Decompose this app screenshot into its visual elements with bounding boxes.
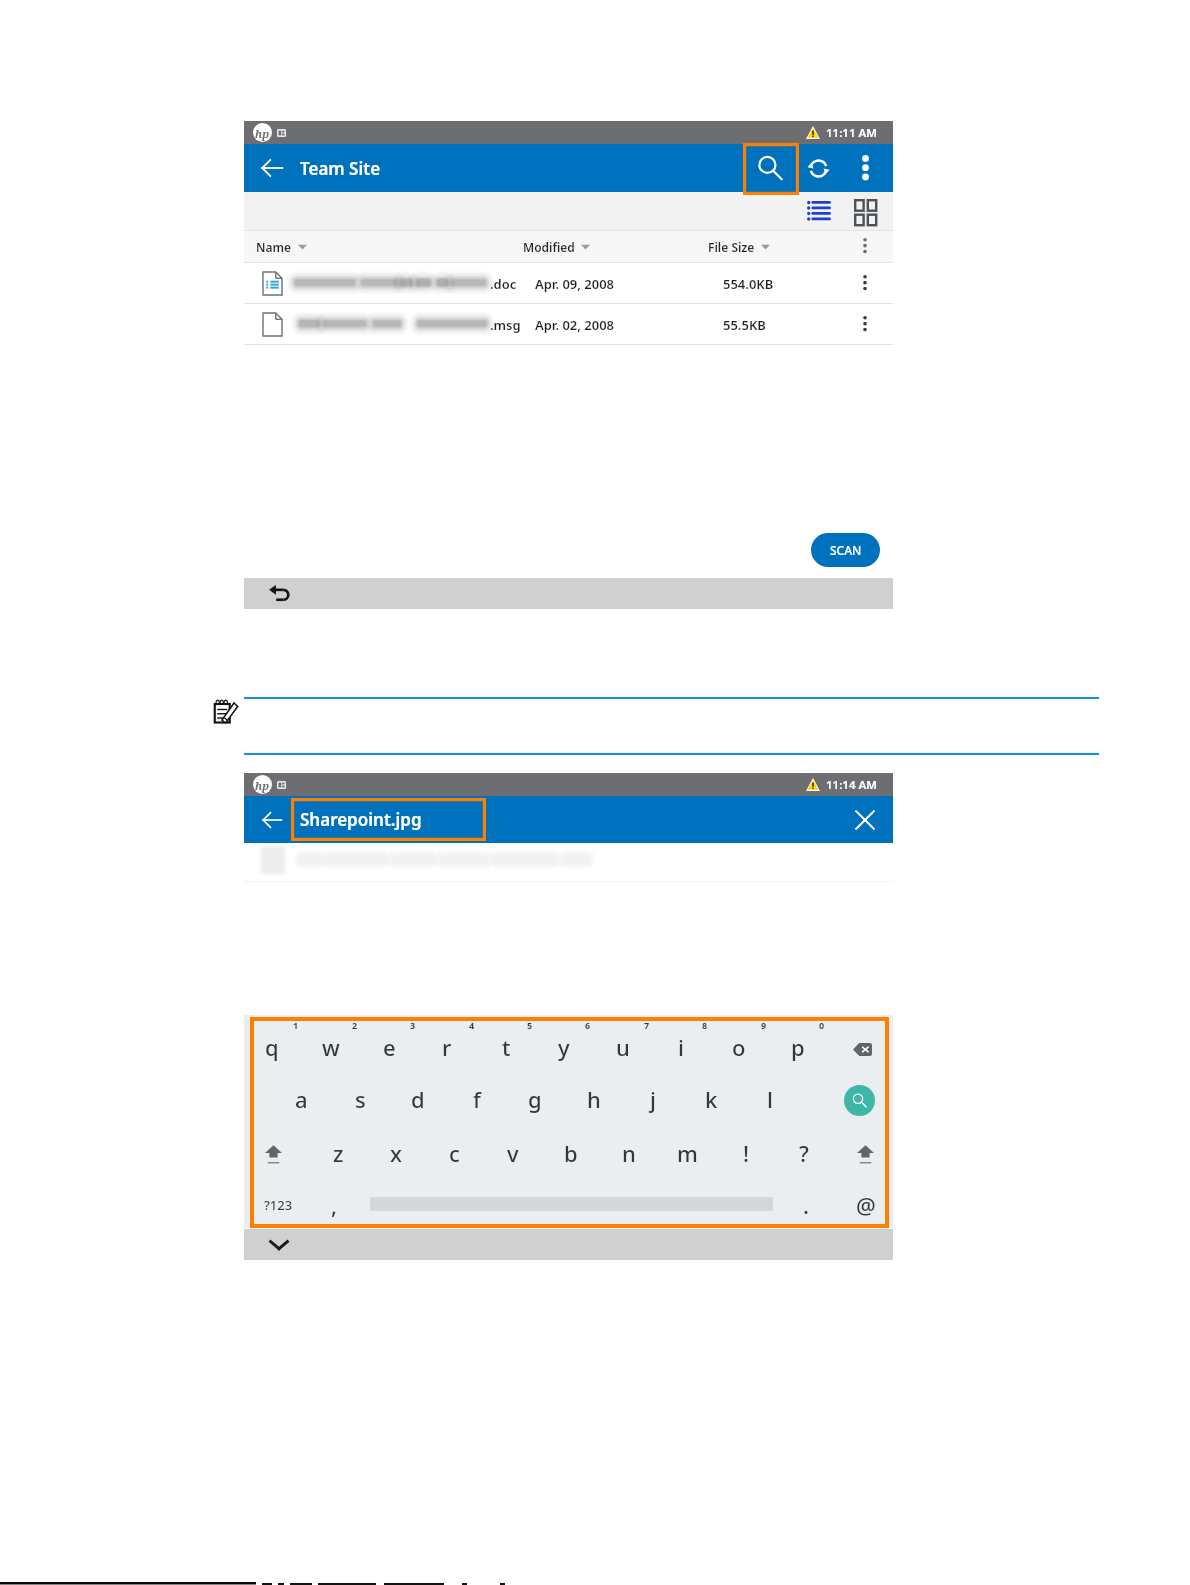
- staticText: g: [528, 1084, 542, 1114]
- button[interactable]: !: [717, 1128, 775, 1178]
- staticText: File Size: [708, 239, 755, 255]
- staticText: k: [705, 1084, 718, 1114]
- button[interactable]: Item options: [844, 304, 885, 344]
- button[interactable]: Backspace: [839, 1024, 885, 1074]
- staticText: n: [622, 1138, 636, 1168]
- button[interactable]: [244, 843, 893, 881]
- button[interactable]: Modified: [523, 231, 590, 262]
- staticText: h: [587, 1084, 601, 1114]
- staticText: Name: [256, 239, 292, 255]
- button[interactable]: b: [542, 1128, 600, 1178]
- button[interactable]: x: [367, 1128, 425, 1178]
- staticText: Sharepoint.jpg: [300, 808, 422, 831]
- button[interactable]: t: [477, 1022, 535, 1072]
- button[interactable]: q: [243, 1022, 301, 1072]
- staticText: .doc: [490, 275, 517, 293]
- staticText: Modified: [523, 239, 575, 255]
- staticText: q: [265, 1032, 279, 1062]
- button[interactable]: List view: [796, 192, 840, 230]
- staticText: e: [383, 1032, 396, 1062]
- button[interactable]: n: [600, 1128, 658, 1178]
- staticText: 7: [644, 1019, 650, 1031]
- staticText: Apr. 09, 2008: [535, 275, 615, 293]
- button[interactable]: u: [594, 1022, 652, 1072]
- button[interactable]: .: [786, 1182, 826, 1227]
- button[interactable]: y: [535, 1022, 593, 1072]
- button[interactable]: Sort options: [844, 231, 885, 262]
- staticText: 55.5KB: [723, 316, 766, 334]
- staticText: 2: [352, 1019, 358, 1031]
- staticText: 554.0KB: [723, 275, 774, 293]
- staticText: 0: [819, 1019, 825, 1031]
- staticText: 11:14 AM: [826, 777, 877, 793]
- staticText: u: [616, 1032, 630, 1062]
- button[interactable]: Refresh: [794, 144, 842, 192]
- button[interactable]: o: [710, 1022, 768, 1072]
- staticText: a: [295, 1084, 308, 1114]
- staticText: 3: [410, 1019, 416, 1031]
- staticText: hp: [255, 778, 270, 793]
- button[interactable]: h: [565, 1074, 623, 1124]
- button[interactable]: Shift: [250, 1129, 296, 1179]
- button[interactable]: @: [846, 1182, 886, 1227]
- staticText: Team Site: [300, 157, 381, 180]
- staticText: o: [732, 1032, 746, 1062]
- button[interactable]: Clear search: [837, 796, 893, 843]
- button[interactable]: Sharepoint.jpg: [300, 798, 495, 841]
- button[interactable]: j: [624, 1074, 682, 1124]
- button[interactable]: k: [682, 1074, 740, 1124]
- button[interactable]: More options: [844, 144, 886, 192]
- staticText: b: [564, 1138, 578, 1168]
- staticText: 4: [469, 1019, 475, 1031]
- button[interactable]: i: [652, 1022, 710, 1072]
- button[interactable]: r: [418, 1022, 476, 1072]
- staticText: d: [411, 1084, 425, 1114]
- button[interactable]: Search: [844, 1085, 875, 1116]
- button[interactable]: c: [425, 1128, 483, 1178]
- button[interactable]: Item options: [844, 263, 885, 303]
- staticText: !: [743, 1138, 750, 1168]
- staticText: .: [803, 1190, 809, 1220]
- button[interactable]: Back: [244, 144, 300, 192]
- button[interactable]: f: [448, 1074, 506, 1124]
- staticText: ,: [331, 1190, 338, 1220]
- staticText: m: [677, 1138, 698, 1168]
- staticText: 5: [527, 1019, 533, 1031]
- button[interactable]: p: [769, 1022, 827, 1072]
- button[interactable]: ?123: [249, 1182, 307, 1227]
- button[interactable]: w: [302, 1022, 360, 1072]
- button[interactable]: Back: [256, 578, 302, 609]
- button[interactable]: .doc: [244, 263, 893, 303]
- button[interactable]: Back: [244, 796, 300, 843]
- staticText: 6: [585, 1019, 591, 1031]
- button[interactable]: l: [741, 1074, 799, 1124]
- button[interactable]: Hide keyboard: [256, 1229, 302, 1260]
- staticText: y: [558, 1032, 570, 1062]
- button[interactable]: z: [309, 1128, 367, 1178]
- button[interactable]: SCAN: [811, 533, 880, 567]
- button[interactable]: g: [506, 1074, 564, 1124]
- button[interactable]: v: [484, 1128, 542, 1178]
- staticText: Apr. 02, 2008: [535, 316, 615, 334]
- button[interactable]: Grid view: [843, 192, 885, 230]
- staticText: hp: [255, 126, 270, 141]
- staticText: s: [355, 1084, 366, 1114]
- button[interactable]: Search: [743, 144, 797, 192]
- button[interactable]: e: [360, 1022, 418, 1072]
- staticText: f: [473, 1084, 481, 1114]
- button[interactable]: ,: [314, 1182, 354, 1227]
- button[interactable]: d: [389, 1074, 447, 1124]
- staticText: 1: [293, 1019, 299, 1031]
- button[interactable]: m: [658, 1128, 716, 1178]
- button[interactable]: a: [272, 1074, 330, 1124]
- button[interactable]: ?: [775, 1128, 833, 1178]
- button[interactable]: Name: [256, 231, 307, 262]
- staticText: w: [322, 1032, 340, 1062]
- button[interactable]: .msg: [244, 304, 893, 344]
- button[interactable]: s: [331, 1074, 389, 1124]
- staticText: c: [449, 1138, 460, 1168]
- button[interactable]: File Size: [708, 231, 770, 262]
- button[interactable]: Shift: [842, 1129, 888, 1179]
- staticText: v: [507, 1138, 519, 1168]
